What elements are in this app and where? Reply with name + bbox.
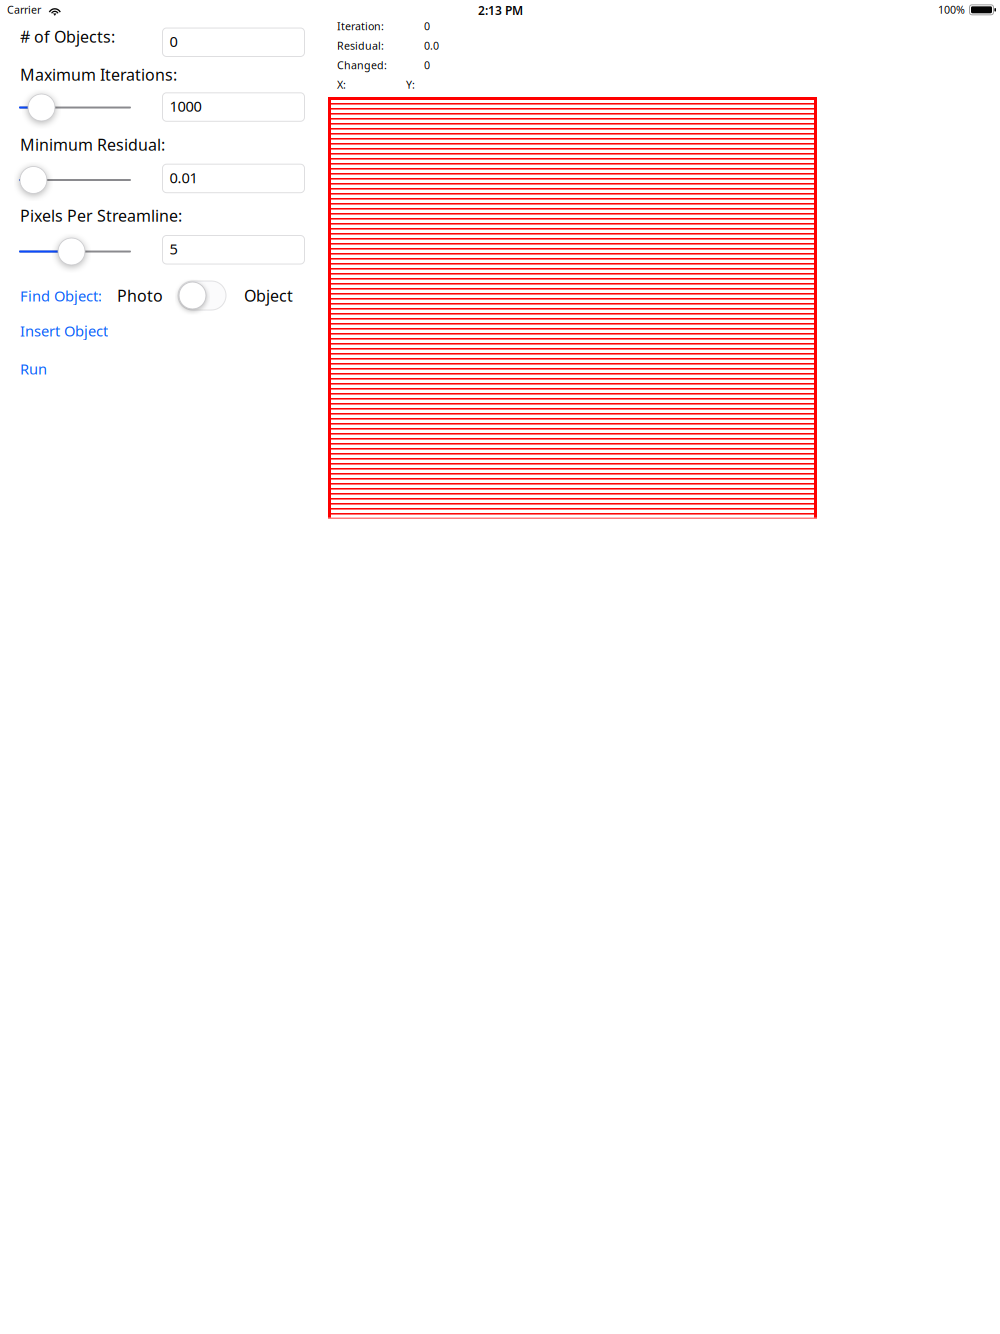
staticText: Changed: (337, 58, 387, 72)
staticText: Residual: (337, 38, 384, 53)
staticText: Find Object: (20, 286, 102, 305)
staticText: # of Objects: (20, 26, 115, 47)
button[interactable]: Insert Object (20, 321, 108, 340)
staticText: 100% (938, 2, 965, 17)
staticText: Y: (406, 77, 415, 92)
button[interactable]: Pixels per streamline (162, 235, 304, 264)
staticText: Run (20, 359, 47, 378)
button[interactable]: Maximum iterations (162, 93, 304, 121)
button[interactable]: Maximum iterations (19, 94, 131, 121)
staticText: Photo (117, 285, 163, 306)
button[interactable]: Pixels per streamline (19, 238, 131, 265)
button[interactable]: Minimum residual (162, 164, 304, 193)
staticText: X: (337, 77, 346, 92)
staticText: Minimum Residual: (20, 134, 165, 155)
staticText: 2:13 PM (478, 2, 523, 18)
staticText: 1000 (169, 96, 201, 116)
staticText: 0 (169, 31, 177, 51)
staticText: 0 (424, 19, 430, 33)
staticText: Iteration: (337, 19, 384, 33)
staticText: 0.0 (424, 38, 439, 53)
staticText: Pixels Per Streamline: (20, 205, 182, 226)
staticText: 0 (424, 58, 430, 72)
button[interactable]: Find Object: (20, 286, 102, 305)
button[interactable]: Minimum residual (19, 166, 131, 193)
staticText: Object (244, 285, 293, 306)
button[interactable]: Run (20, 359, 47, 378)
button[interactable]: Find object in photo or object (178, 281, 226, 310)
staticText: Carrier (7, 2, 41, 17)
staticText: Insert Object (20, 321, 108, 340)
staticText: 5 (169, 239, 177, 258)
staticText: 0.01 (169, 168, 197, 187)
staticText: Maximum Iterations: (20, 64, 177, 85)
button[interactable]: Number of objects (162, 28, 304, 56)
